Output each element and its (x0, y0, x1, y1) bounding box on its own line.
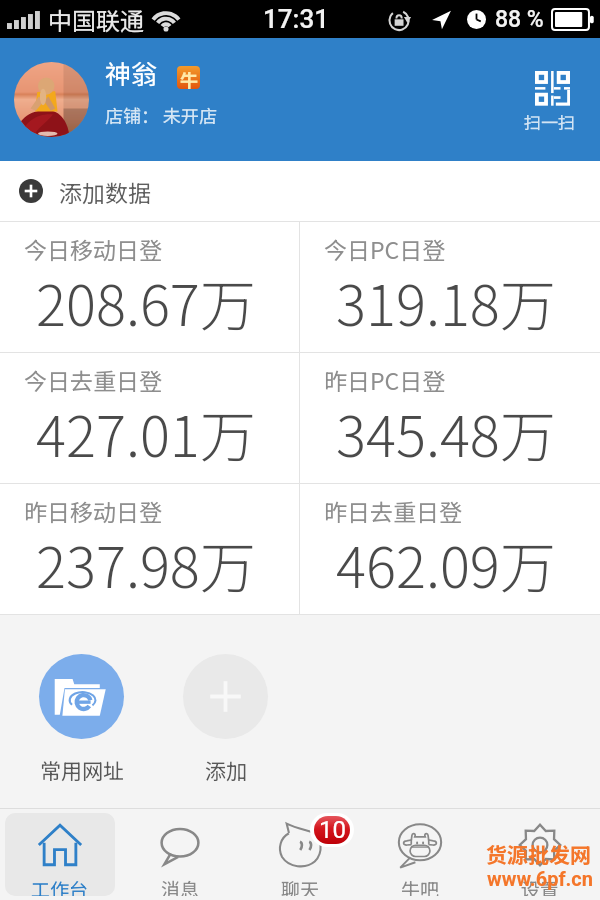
staticText: 昨日移动日登 (24, 494, 162, 527)
staticText: 今日移动日登 (24, 232, 162, 265)
staticText: 昨日去重日登 (324, 494, 462, 527)
staticText: 208.67万 (36, 261, 256, 342)
staticText: 17:31 (263, 4, 329, 34)
button[interactable]: 牛吧 (365, 813, 475, 896)
staticText: 聊天 (281, 875, 320, 896)
button[interactable]: 扫一扫 (517, 71, 581, 134)
button[interactable]: 昨日PC日登 (300, 353, 600, 483)
staticText: 神翁 (105, 54, 158, 92)
staticText: 扫一扫 (524, 109, 575, 134)
staticText: 462.09万 (336, 523, 556, 604)
staticText: 昨日PC日登 (324, 363, 446, 396)
button[interactable]: 今日移动日登 (0, 222, 299, 352)
staticText: 店铺： 未开店 (105, 102, 218, 128)
staticText: 常用网址 (40, 755, 124, 785)
staticText: 添加数据 (59, 175, 151, 208)
button[interactable]: 工作台 (5, 813, 115, 896)
button[interactable]: 消息 (125, 813, 235, 896)
staticText: 添加 (205, 755, 247, 785)
staticText: 345.48万 (336, 392, 556, 473)
button[interactable]: 昨日移动日登 (0, 484, 299, 614)
button[interactable]: 10 (245, 813, 355, 896)
button[interactable]: 昨日去重日登 (300, 484, 600, 614)
staticText: 237.98万 (36, 523, 256, 604)
staticText: 工作台 (31, 875, 89, 896)
button[interactable]: 添加数据 (0, 161, 600, 221)
staticText: 427.01万 (36, 392, 256, 473)
button[interactable]: 今日PC日登 (300, 222, 600, 352)
button[interactable]: 头像 (14, 62, 89, 137)
button[interactable]: 设置 (485, 813, 595, 896)
button[interactable]: 常用网址 (34, 650, 129, 785)
staticText: 设置 (521, 875, 560, 896)
staticText: 88 % (495, 6, 544, 33)
button[interactable]: 今日去重日登 (0, 353, 299, 483)
staticText: 319.18万 (336, 261, 556, 342)
staticText: 牛 (180, 66, 198, 89)
staticText: 中国联通 (48, 2, 144, 37)
staticText: 今日PC日登 (324, 232, 446, 265)
staticText: 牛吧 (401, 875, 440, 896)
button[interactable]: 添加 (178, 650, 273, 785)
staticText: 10 (319, 816, 346, 844)
staticText: www.6pf.cn (487, 867, 593, 890)
staticText: 今日去重日登 (24, 363, 162, 396)
staticText: 货源批发网 (486, 839, 591, 869)
staticText: 消息 (161, 875, 200, 896)
